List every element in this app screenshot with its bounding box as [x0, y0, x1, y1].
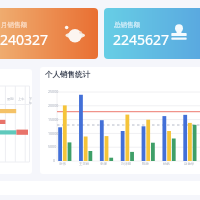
button[interactable]: 总销售额: [104, 8, 200, 59]
staticText: 王芳丽: [79, 162, 90, 166]
other: Monthly sales: [64, 23, 86, 45]
staticText: 下午: [29, 97, 32, 105]
staticText: 25000: [48, 89, 59, 94]
staticText: 总销售额: [114, 21, 140, 29]
staticText: 15000: [48, 117, 59, 122]
staticText: 上午: [18, 97, 25, 101]
button[interactable]: 星期: [0, 69, 32, 174]
staticText: 刘洋明: [121, 162, 132, 166]
staticText: 张伟: [59, 162, 66, 166]
staticText: 240327: [0, 30, 49, 49]
staticText: 5000: [48, 144, 57, 149]
staticText: 0: [53, 158, 56, 163]
staticText: 李娜: [100, 162, 107, 166]
staticText: 星期: [7, 97, 14, 101]
staticText: 10000: [48, 131, 59, 136]
staticText: 2245627: [113, 30, 170, 49]
staticText: 月销售额: [1, 21, 27, 29]
other: Total sales: [167, 21, 191, 45]
staticText: 杨帆: [163, 162, 170, 166]
staticText: 赵敏华: [184, 162, 195, 166]
staticText: 陈静: [142, 162, 149, 166]
staticText: 个人销售统计: [45, 70, 90, 79]
staticText: 20000: [48, 103, 59, 108]
button[interactable]: 月销售额: [0, 8, 98, 59]
